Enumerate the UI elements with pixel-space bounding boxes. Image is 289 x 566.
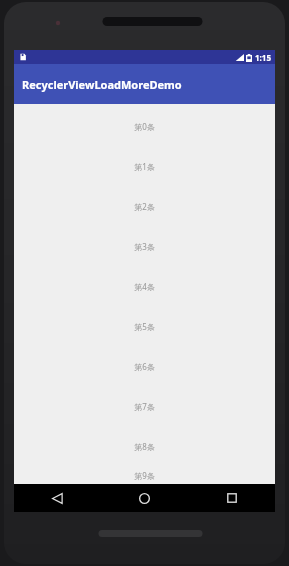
button[interactable]: 第9条 — [14, 466, 275, 484]
staticText: 第1条 — [134, 161, 155, 172]
button[interactable]: RecyclerViewLoadMoreDemo — [14, 64, 275, 104]
button[interactable]: 第2条 — [14, 186, 275, 226]
button[interactable]: Recent apps — [188, 484, 275, 512]
staticText: 第3条 — [134, 241, 155, 252]
button[interactable]: 第4条 — [14, 266, 275, 306]
staticText: 第0条 — [134, 121, 155, 132]
button[interactable]: 第0条 — [14, 106, 275, 146]
staticText: 第2条 — [134, 201, 155, 212]
button[interactable]: Home — [101, 484, 188, 512]
staticText: 1:15 — [255, 52, 271, 63]
staticText: 第4条 — [134, 281, 155, 292]
button[interactable]: 第7条 — [14, 386, 275, 426]
button[interactable]: 第1条 — [14, 146, 275, 186]
button[interactable]: 第5条 — [14, 306, 275, 346]
button[interactable]: 第8条 — [14, 426, 275, 466]
button[interactable]: 第6条 — [14, 346, 275, 386]
staticText: 第9条 — [134, 470, 155, 481]
staticText: 第8条 — [134, 441, 155, 452]
staticText: 第5条 — [134, 321, 155, 332]
staticText: RecyclerViewLoadMoreDemo — [22, 77, 182, 92]
button[interactable]: 第3条 — [14, 226, 275, 266]
staticText: 第7条 — [134, 401, 155, 412]
button[interactable]: Back — [14, 484, 101, 512]
staticText: 第6条 — [134, 361, 155, 372]
